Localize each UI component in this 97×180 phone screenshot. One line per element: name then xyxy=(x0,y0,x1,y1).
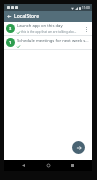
staticText: 3 xyxy=(9,26,12,31)
button[interactable]: Add xyxy=(72,141,85,154)
staticText: 11:00 xyxy=(82,6,90,10)
staticText: 1 xyxy=(9,40,12,45)
button[interactable]: Recent apps xyxy=(68,161,77,170)
button[interactable]: More options xyxy=(82,25,90,33)
staticText: Schedule meetings for next week script xyxy=(17,38,89,44)
button[interactable]: Navigate up xyxy=(5,12,14,21)
button[interactable]: Home xyxy=(44,161,53,170)
staticText: LocalStore xyxy=(14,13,39,20)
staticText: this is the app that we are talking abo.… xyxy=(21,30,77,34)
staticText: Launch app on this day xyxy=(17,23,63,29)
button[interactable]: 1 xyxy=(4,36,92,49)
button[interactable]: 3 xyxy=(4,22,92,35)
button[interactable]: Back xyxy=(19,161,28,170)
